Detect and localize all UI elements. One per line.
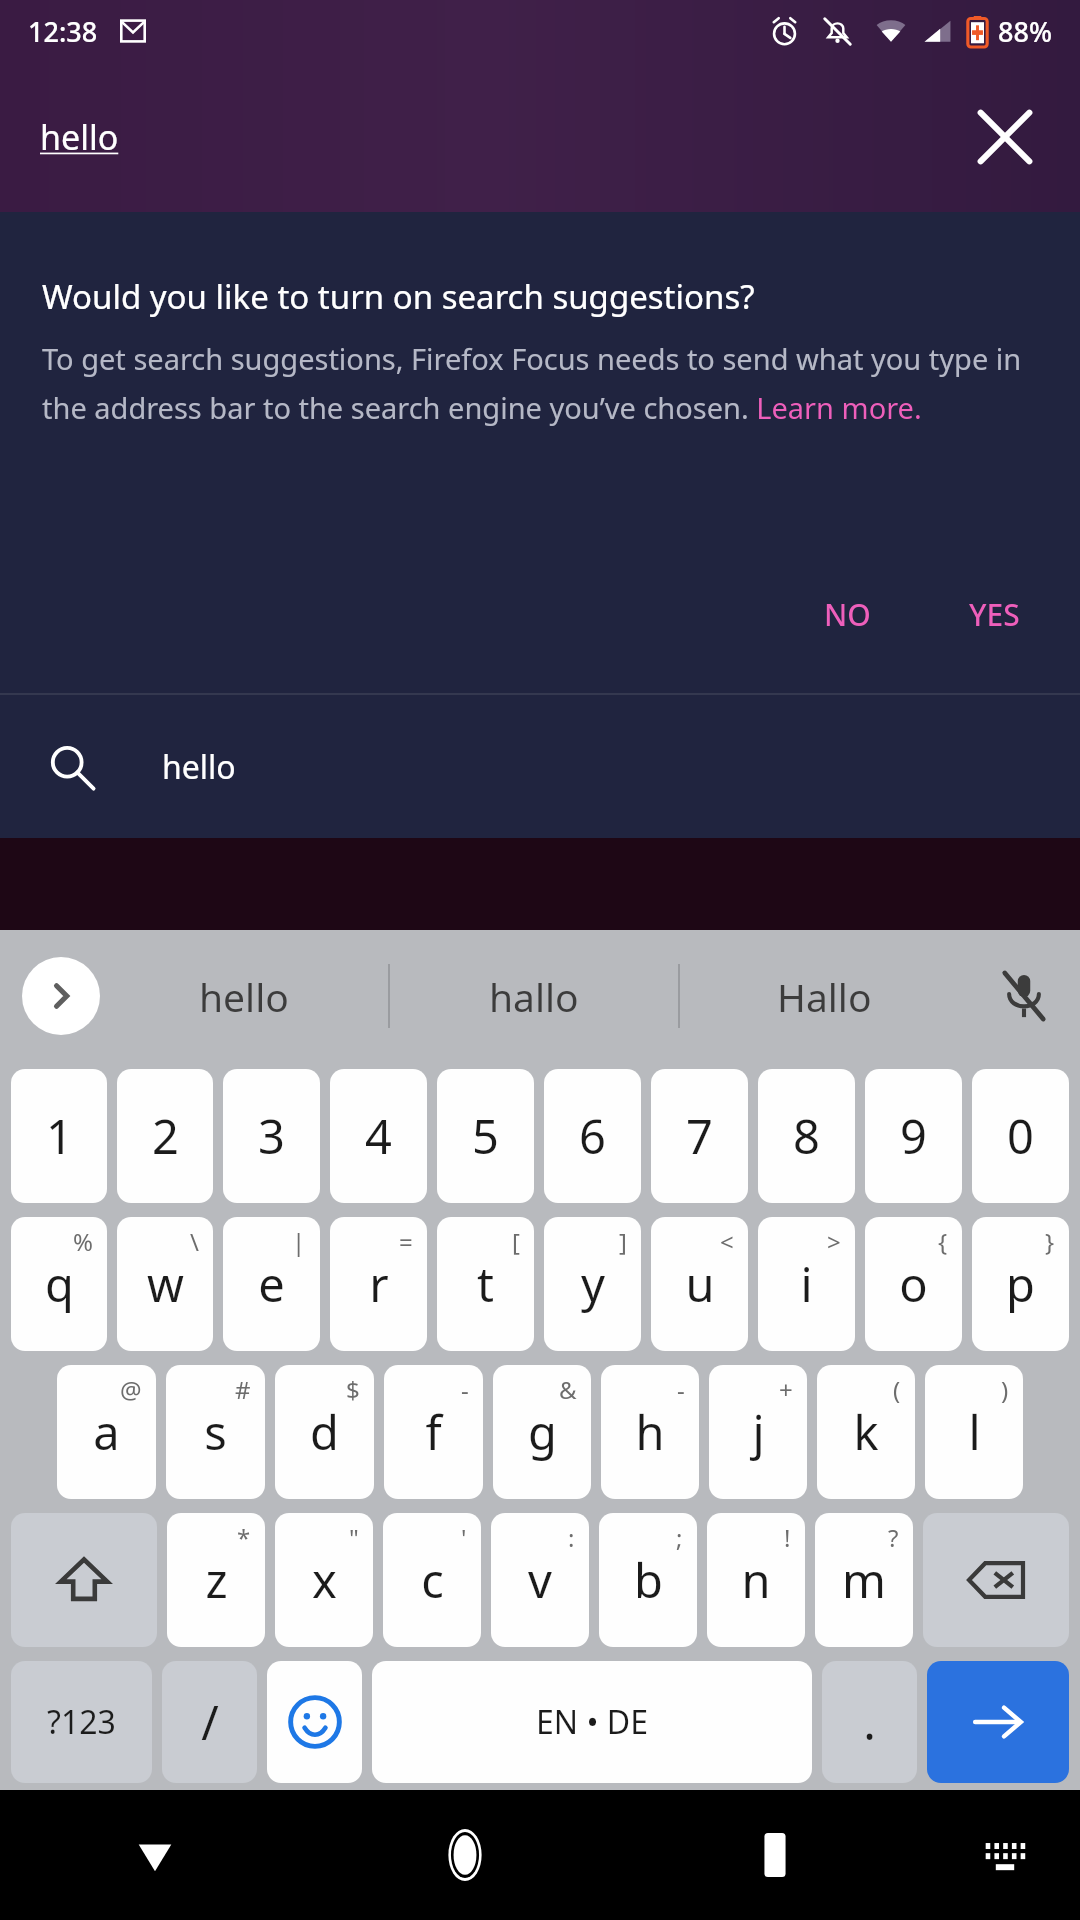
staticText: s <box>204 1400 227 1464</box>
button[interactable]: i <box>758 1217 855 1351</box>
staticText: j <box>752 1400 765 1464</box>
button[interactable]: a <box>57 1365 156 1499</box>
staticText: Hallo <box>777 970 872 1023</box>
staticText: [ <box>512 1225 520 1258</box>
staticText: . <box>863 1690 876 1754</box>
staticText: @ <box>120 1373 142 1406</box>
staticText: 5 <box>472 1104 499 1168</box>
staticText: 7 <box>686 1104 713 1168</box>
staticText: h <box>635 1400 665 1464</box>
staticText: & <box>559 1373 577 1406</box>
button[interactable]: e <box>223 1217 320 1351</box>
staticText: z <box>205 1548 228 1612</box>
button[interactable]: More suggestions <box>22 957 100 1035</box>
staticText: b <box>634 1548 663 1612</box>
button[interactable]: EN • DE <box>372 1661 812 1783</box>
button[interactable]: Hide keyboard <box>930 1790 1080 1920</box>
button[interactable]: l <box>925 1365 1023 1499</box>
staticText: 9 <box>900 1104 927 1168</box>
button[interactable]: Voice input <box>968 930 1080 1062</box>
staticText: 12:38 <box>28 13 98 50</box>
staticText: k <box>853 1400 879 1464</box>
button[interactable]: hello <box>100 930 388 1062</box>
button[interactable]: x <box>275 1513 373 1647</box>
button[interactable]: c <box>383 1513 481 1647</box>
button[interactable]: b <box>599 1513 697 1647</box>
button[interactable]: u <box>651 1217 748 1351</box>
button[interactable]: w <box>117 1217 213 1351</box>
button[interactable]: 9 <box>865 1069 962 1203</box>
button[interactable]: h <box>601 1365 699 1499</box>
staticText: { <box>938 1225 948 1258</box>
button[interactable]: Hallo <box>680 930 968 1062</box>
staticText: hello <box>199 970 289 1023</box>
button[interactable]: 3 <box>223 1069 320 1203</box>
staticText: ] <box>619 1225 627 1258</box>
button[interactable]: 8 <box>758 1069 855 1203</box>
button[interactable]: Back <box>0 1790 310 1920</box>
staticText: y <box>581 1252 605 1316</box>
button[interactable]: n <box>707 1513 805 1647</box>
staticText: q <box>45 1252 74 1316</box>
button[interactable]: 2 <box>117 1069 213 1203</box>
button[interactable]: 7 <box>651 1069 748 1203</box>
button[interactable]: NO <box>800 580 895 649</box>
button[interactable]: 1 <box>11 1069 107 1203</box>
button[interactable]: 6 <box>544 1069 641 1203</box>
button[interactable]: YES <box>945 580 1044 649</box>
button[interactable]: Enter <box>927 1661 1069 1783</box>
staticText: c <box>421 1548 444 1612</box>
button[interactable]: 4 <box>330 1069 427 1203</box>
button[interactable]: Backspace <box>923 1513 1069 1647</box>
staticText: ; <box>676 1521 683 1554</box>
staticText: hallo <box>489 970 579 1023</box>
staticText: l <box>968 1400 981 1464</box>
button[interactable]: Close <box>930 62 1080 212</box>
button[interactable]: t <box>437 1217 534 1351</box>
button[interactable]: Recents <box>620 1790 930 1920</box>
button[interactable]: m <box>815 1513 913 1647</box>
button[interactable]: j <box>709 1365 807 1499</box>
staticText: i <box>800 1252 813 1316</box>
staticText: u <box>685 1252 715 1316</box>
button[interactable]: g <box>493 1365 591 1499</box>
button[interactable]: v <box>491 1513 589 1647</box>
button[interactable]: hello <box>0 695 1080 838</box>
staticText: Would you like to turn on search suggest… <box>42 274 755 319</box>
button[interactable]: hello <box>0 62 930 212</box>
button[interactable]: Shift <box>11 1513 157 1647</box>
button[interactable]: f <box>384 1365 483 1499</box>
button[interactable]: p <box>972 1217 1069 1351</box>
button[interactable]: Emoji <box>267 1661 362 1783</box>
button[interactable]: 0 <box>972 1069 1069 1203</box>
staticText: hello <box>162 745 236 789</box>
staticText: \ <box>190 1225 199 1258</box>
button[interactable]: z <box>167 1513 265 1647</box>
staticText: a <box>93 1400 120 1464</box>
staticText: NO <box>824 594 871 635</box>
button[interactable]: . <box>822 1661 917 1783</box>
button[interactable]: y <box>544 1217 641 1351</box>
button[interactable]: s <box>166 1365 265 1499</box>
staticText: ?123 <box>47 1700 116 1744</box>
button[interactable]: r <box>330 1217 427 1351</box>
staticText: > <box>827 1225 841 1258</box>
staticText: | <box>292 1225 306 1258</box>
staticText: g <box>528 1400 557 1464</box>
staticText: ' <box>461 1521 467 1554</box>
staticText: ( <box>893 1373 901 1406</box>
button[interactable]: Home <box>310 1790 620 1920</box>
button[interactable]: 5 <box>437 1069 534 1203</box>
staticText: - <box>461 1373 469 1406</box>
staticText: YES <box>969 594 1020 635</box>
staticText: m <box>842 1548 886 1612</box>
button[interactable]: / <box>162 1661 257 1783</box>
button[interactable]: k <box>817 1365 915 1499</box>
button[interactable]: q <box>11 1217 107 1351</box>
staticText: t <box>477 1252 494 1316</box>
button[interactable]: d <box>275 1365 374 1499</box>
button[interactable]: hallo <box>390 930 678 1062</box>
staticText: : <box>568 1521 575 1554</box>
button[interactable]: o <box>865 1217 962 1351</box>
button[interactable]: ?123 <box>11 1661 152 1783</box>
